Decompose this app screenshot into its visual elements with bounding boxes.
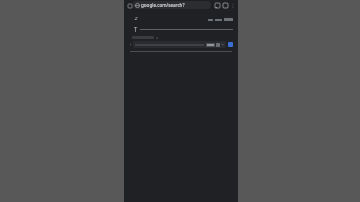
button[interactable]: Home: [126, 2, 133, 9]
staticText: google.com/search?: [141, 2, 185, 8]
button[interactable]: More options: [229, 2, 236, 9]
button[interactable]: Link: [215, 19, 222, 21]
button[interactable]: Link: [208, 19, 213, 21]
button[interactable]: Open dropdown: [216, 43, 220, 47]
button[interactable]: Search: [228, 42, 233, 47]
button[interactable]: Tabs: [221, 1, 229, 9]
button[interactable]: Open dropdown: [133, 41, 226, 48]
button[interactable]: google.com/search?: [133, 1, 211, 9]
other: Expand: [221, 43, 224, 46]
button[interactable]: [206, 43, 215, 47]
button[interactable]: Cast: [213, 1, 221, 9]
